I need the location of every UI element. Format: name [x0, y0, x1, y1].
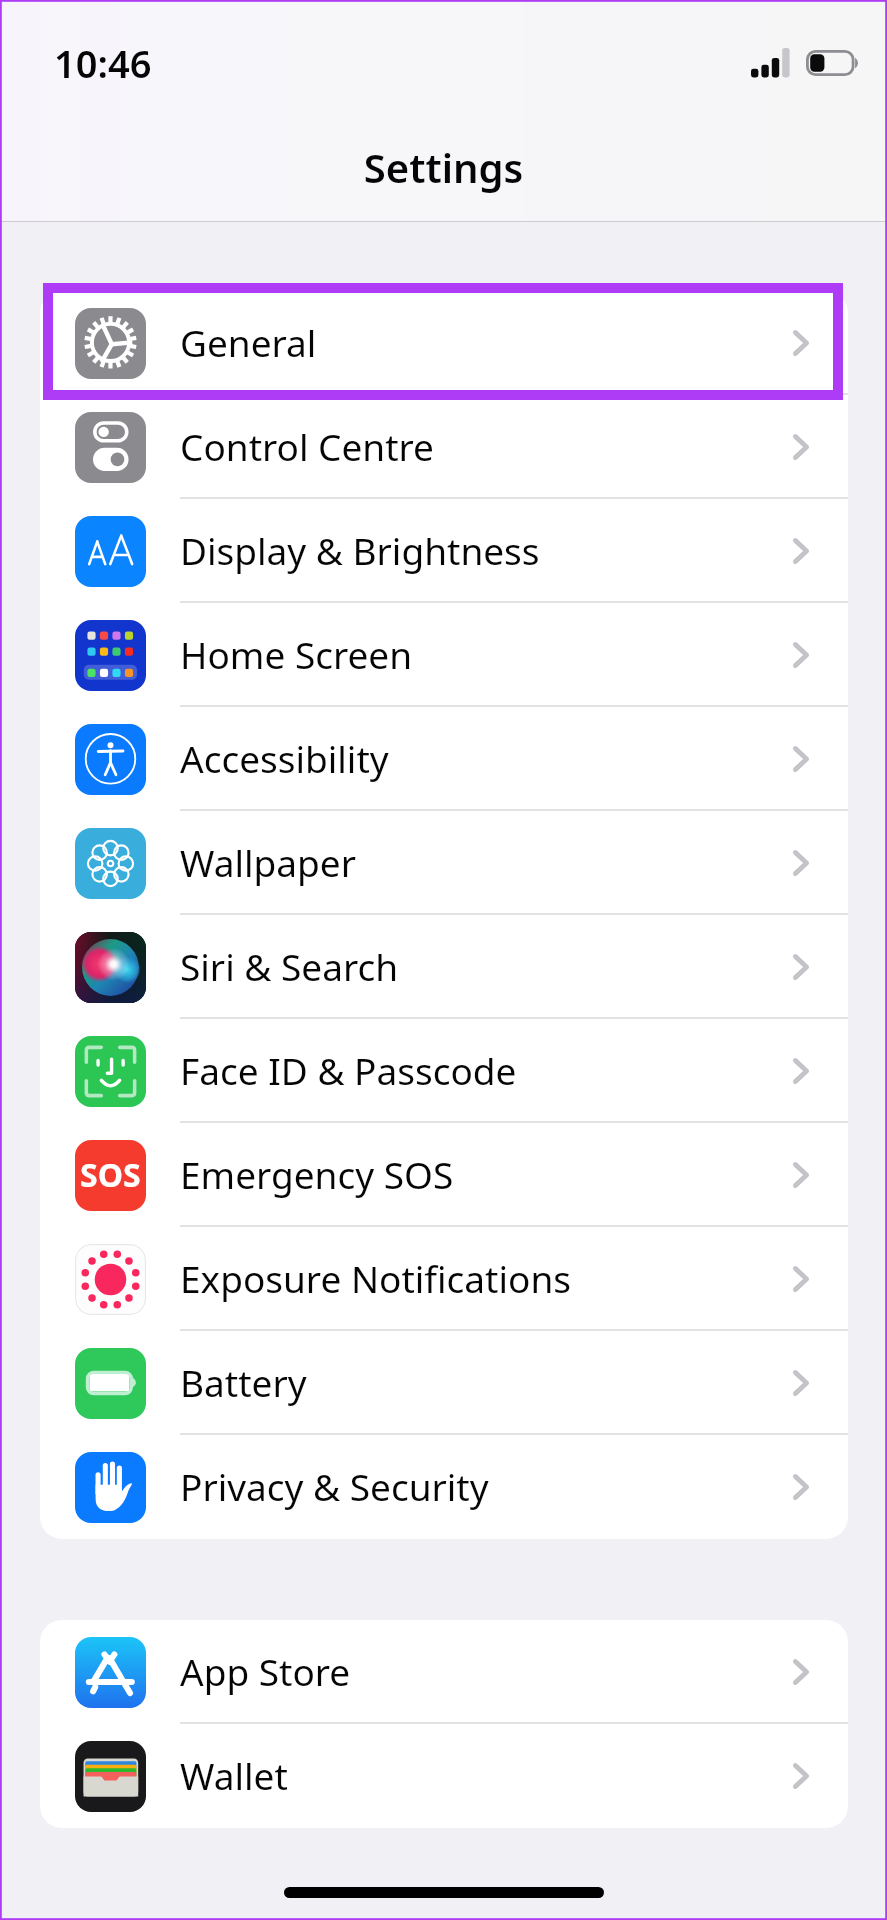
staticText: Siri & Search [180, 941, 784, 991]
other: Cellular signal strength [751, 48, 792, 78]
button[interactable]: Accessibility [40, 707, 848, 811]
staticText: 10:46 [54, 37, 152, 89]
staticText: Exposure Notifications [180, 1253, 784, 1303]
button[interactable]: Face ID & Passcode [40, 1019, 848, 1123]
button[interactable]: Battery [40, 1331, 848, 1435]
other: Battery level [806, 50, 862, 78]
staticText: Settings [0, 140, 887, 194]
staticText: Wallpaper [180, 837, 784, 887]
staticText: SOS [80, 1153, 141, 1197]
button[interactable]: Home Screen [40, 603, 848, 707]
button[interactable]: Exposure Notifications [40, 1227, 848, 1331]
staticText: App Store [180, 1646, 784, 1696]
button[interactable]: SOS [40, 1123, 848, 1227]
staticText: Face ID & Passcode [180, 1045, 784, 1095]
staticText: Privacy & Security [180, 1461, 784, 1511]
staticText: Control Centre [180, 421, 784, 471]
button[interactable]: Control Centre [40, 395, 848, 499]
button[interactable]: Display & Brightness [40, 499, 848, 603]
button[interactable]: Privacy & Security [40, 1435, 848, 1539]
staticText: Display & Brightness [180, 525, 784, 575]
staticText: Accessibility [180, 733, 784, 783]
button[interactable]: App Store [40, 1620, 848, 1724]
staticText: Wallet [180, 1750, 784, 1800]
button[interactable]: Wallet [40, 1724, 848, 1828]
staticText: Emergency SOS [180, 1149, 784, 1199]
button[interactable]: Wallpaper [40, 811, 848, 915]
button[interactable]: General [40, 291, 848, 395]
staticText: General [180, 317, 784, 367]
button[interactable]: Siri & Search [40, 915, 848, 1019]
staticText: Battery [180, 1357, 784, 1407]
staticText: Home Screen [180, 629, 784, 679]
